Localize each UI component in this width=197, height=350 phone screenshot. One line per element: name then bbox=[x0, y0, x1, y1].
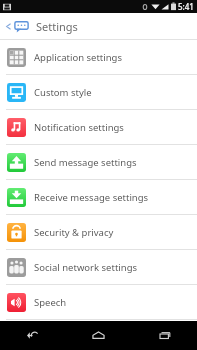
button[interactable]: Send message settings bbox=[0, 145, 197, 179]
staticText: Speech bbox=[34, 296, 67, 309]
button[interactable]: Up, Settings bbox=[0, 13, 197, 39]
button[interactable]: Home bbox=[65, 321, 131, 350]
button[interactable]: Notification settings bbox=[0, 110, 197, 144]
button[interactable]: Custom style bbox=[0, 75, 197, 109]
button[interactable]: Social network settings bbox=[0, 250, 197, 284]
staticText: Receive message settings bbox=[34, 191, 149, 204]
staticText: Custom style bbox=[34, 86, 92, 99]
staticText: Send message settings bbox=[34, 156, 137, 169]
staticText: 5:41 bbox=[178, 1, 194, 12]
button[interactable]: Back bbox=[0, 321, 65, 350]
button[interactable]: Receive message settings bbox=[0, 180, 197, 214]
button[interactable]: Application settings bbox=[0, 40, 197, 74]
staticText: Settings bbox=[36, 19, 78, 34]
staticText: Social network settings bbox=[34, 261, 138, 274]
button[interactable]: Security & privacy bbox=[0, 215, 197, 249]
staticText: Security & privacy bbox=[34, 226, 114, 239]
button[interactable]: Speech bbox=[0, 285, 197, 319]
staticText: Notification settings bbox=[34, 121, 124, 134]
staticText: Application settings bbox=[34, 51, 122, 64]
button[interactable]: Recent apps bbox=[131, 321, 197, 350]
